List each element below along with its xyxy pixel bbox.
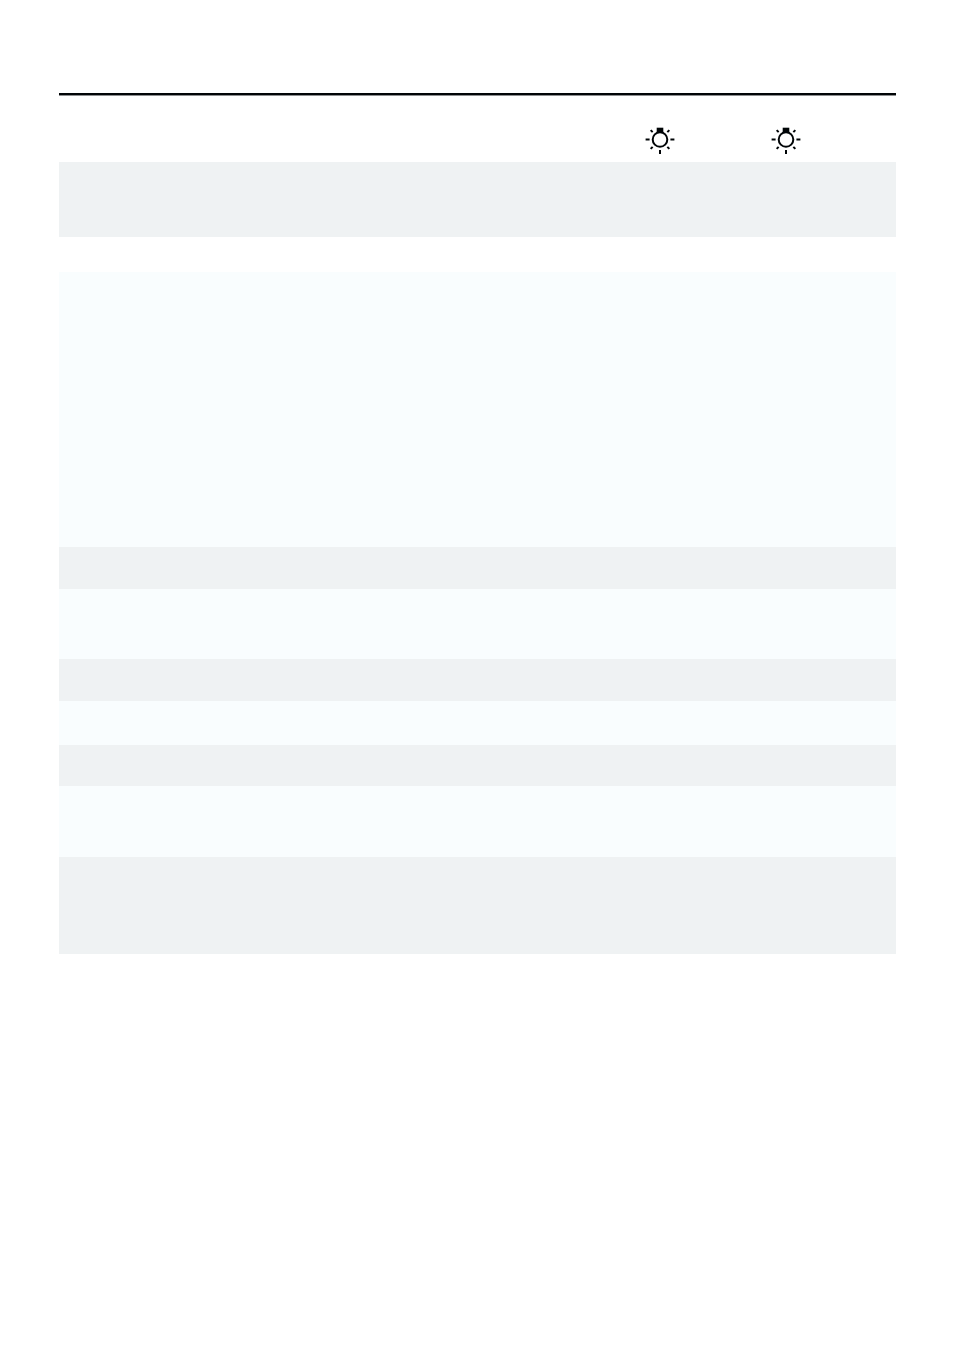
button[interactable]: Increase brightness — [769, 122, 803, 156]
button[interactable]: Decrease brightness — [643, 122, 677, 156]
